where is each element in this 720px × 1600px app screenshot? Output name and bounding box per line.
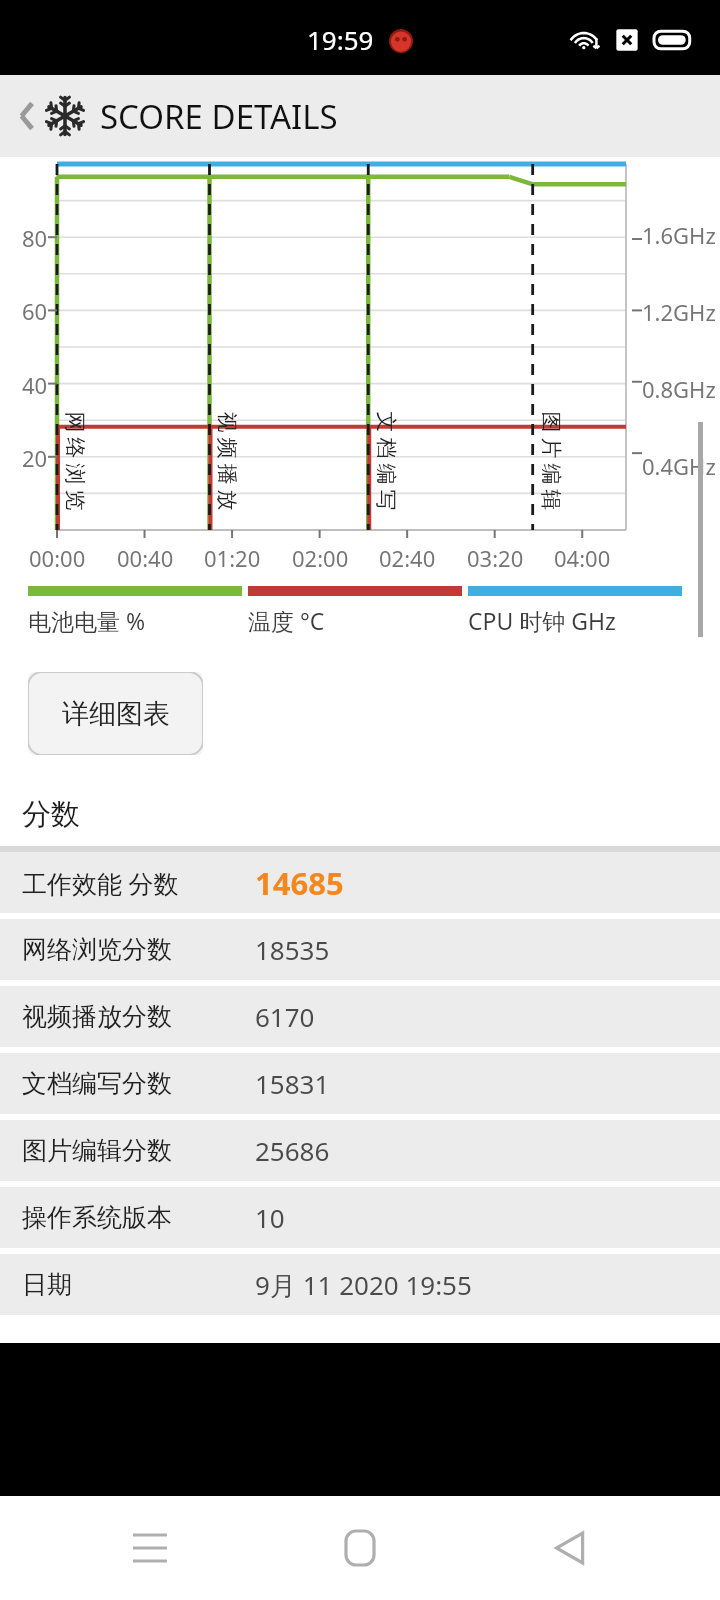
staticText: 02:40 [379,543,436,573]
staticText: 视频播放分数 [22,1001,172,1032]
staticText: 工作效能 分数 [22,866,179,900]
button[interactable]: Back [10,88,44,144]
button[interactable]: 文档编写分数 [0,1053,720,1114]
staticText: 00:40 [117,543,174,573]
staticText: 25686 [255,1133,330,1168]
staticText: 辑 [537,489,563,510]
staticText: 14685 [255,862,344,904]
staticText: 频 [213,437,239,458]
button[interactable]: 图片编辑分数 [0,1120,720,1181]
button[interactable]: Back [510,1496,630,1600]
staticText: 图 [537,411,563,432]
staticText: 0.8GHz [642,374,716,404]
button[interactable]: 操作系统版本 [0,1187,720,1248]
staticText: 1.6GHz [642,220,716,250]
staticText: 浏 [61,463,87,484]
button[interactable]: 详细图表 [28,672,203,755]
staticText: 详细图表 [62,697,170,731]
staticText: 网络浏览分数 [22,934,172,965]
button[interactable]: 视频播放分数 [0,986,720,1047]
staticText: 15831 [255,1066,330,1101]
button[interactable]: Home [300,1496,420,1600]
staticText: 放 [213,489,239,510]
staticText: 分数 [22,796,80,833]
staticText: 图片编辑分数 [22,1135,172,1166]
button[interactable]: Recent apps [90,1496,210,1600]
staticText: 1.2GHz [642,297,716,327]
staticText: 文档编写分数 [22,1068,172,1099]
staticText: 40 [22,370,48,400]
staticText: 18535 [255,932,330,967]
button[interactable]: 网络浏览分数 [0,919,720,980]
staticText: 视 [213,411,239,432]
staticText: 01:20 [204,543,261,573]
staticText: 编 [372,463,398,484]
staticText: 网 [61,411,87,432]
staticText: SCORE DETAILS [100,94,338,139]
staticText: 00:00 [29,543,86,573]
button[interactable]: 工作效能 分数 [0,852,720,913]
staticText: 播 [213,463,239,484]
staticText: 80 [22,223,48,253]
staticText: 02:00 [292,543,349,573]
staticText: 编 [537,463,563,484]
staticText: 日期 [22,1269,72,1300]
staticText: 操作系统版本 [22,1202,172,1233]
staticText: 写 [372,489,398,510]
staticText: 0.4GHz [642,451,716,481]
staticText: 04:00 [554,543,611,573]
staticText: 20 [22,443,48,473]
staticText: 03:20 [467,543,524,573]
staticText: CPU 时钟 GHz [468,605,616,636]
staticText: 片 [537,437,563,458]
staticText: 9月 11 2020 19:55 [255,1267,472,1303]
staticText: 60 [22,296,48,326]
staticText: 19:59 [307,22,374,57]
button[interactable]: 日期 [0,1254,720,1315]
staticText: 温度 °C [248,605,325,636]
staticText: 络 [61,437,87,458]
staticText: 10 [255,1200,285,1235]
staticText: 6170 [255,999,315,1034]
staticText: 档 [372,437,398,458]
staticText: 电池电量 % [28,605,146,636]
staticText: 览 [61,489,87,510]
staticText: 文 [372,411,398,432]
